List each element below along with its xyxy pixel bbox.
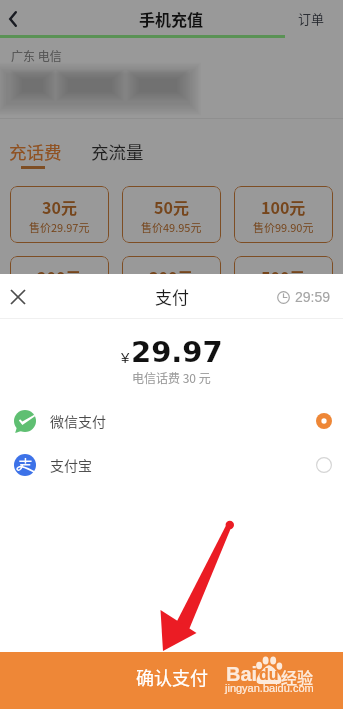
staticText: 售价299.7元: [141, 289, 202, 305]
staticText: 售价29.97元: [29, 219, 90, 235]
staticText: 微信支付: [50, 411, 106, 431]
button[interactable]: 支付宝: [0, 443, 343, 487]
button[interactable]: 200元: [10, 256, 109, 313]
button[interactable]: 订单: [298, 9, 325, 28]
button[interactable]: 微信支付: [0, 399, 343, 443]
staticText: 29.97: [131, 335, 223, 369]
staticText: 售价99.90元: [253, 219, 314, 235]
button[interactable]: 500元: [234, 256, 333, 313]
staticText: 100元: [261, 195, 306, 218]
staticText: 50元: [154, 195, 189, 218]
staticText: jingyan.baidu.com: [225, 682, 314, 694]
staticText: 确认支付: [136, 664, 208, 690]
button[interactable]: 充流量: [91, 139, 144, 164]
staticText: 售价499.5元: [253, 289, 314, 305]
staticText: 29:59: [295, 289, 331, 305]
button[interactable]: 确认支付: [0, 652, 343, 709]
staticText: du: [259, 666, 279, 684]
staticText: 经验: [281, 665, 314, 688]
button[interactable]: 30元: [10, 186, 109, 243]
staticText: 广东 电信: [11, 47, 62, 64]
button[interactable]: Close: [3, 282, 33, 312]
button[interactable]: 充话费: [9, 139, 62, 164]
button[interactable]: Back: [0, 0, 36, 36]
staticText: ¥: [121, 349, 130, 366]
staticText: 支付宝: [50, 455, 92, 475]
staticText: 手机充值: [139, 7, 204, 30]
staticText: Bai: [226, 663, 258, 685]
staticText: 30元: [42, 195, 77, 218]
staticText: 200元: [37, 265, 82, 288]
staticText: 电信话费 30 元: [132, 369, 211, 386]
button[interactable]: 100元: [234, 186, 333, 243]
button[interactable]: 300元: [122, 256, 221, 313]
staticText: 售价49.95元: [141, 219, 202, 235]
button[interactable]: 50元: [122, 186, 221, 243]
staticText: 支付: [155, 284, 189, 309]
staticText: 300元: [149, 265, 194, 288]
staticText: 500元: [261, 265, 306, 288]
